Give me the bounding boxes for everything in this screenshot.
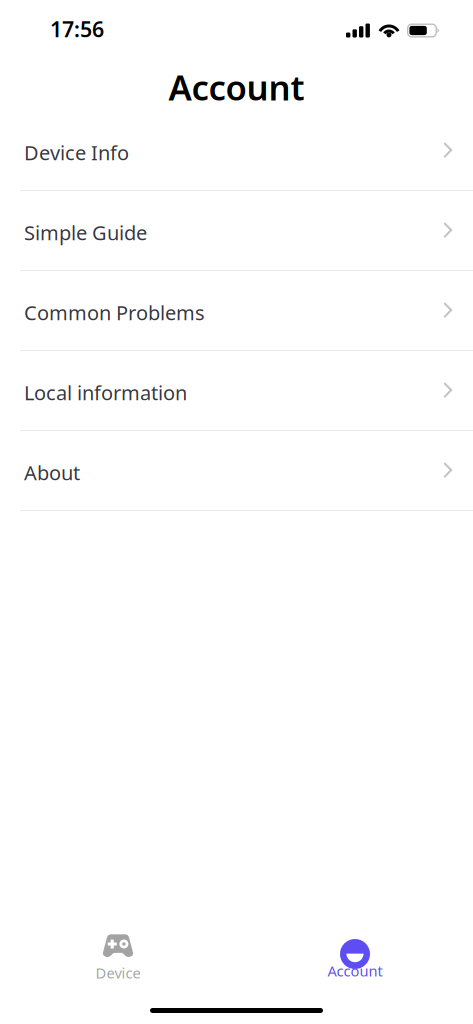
button[interactable]: Common Problems xyxy=(0,271,473,351)
button[interactable]: Simple Guide xyxy=(0,191,473,271)
button[interactable]: Device xyxy=(59,930,177,986)
staticText: 17:56 xyxy=(50,15,104,43)
staticText: Device Info xyxy=(24,139,129,166)
staticText: Simple Guide xyxy=(24,219,147,246)
staticText: Account xyxy=(327,961,382,980)
staticText: About xyxy=(24,459,80,486)
staticText: Local information xyxy=(24,379,187,406)
staticText: Common Problems xyxy=(24,299,205,326)
staticText: Device xyxy=(95,963,140,982)
button[interactable]: Local information xyxy=(0,351,473,431)
button[interactable]: Account xyxy=(296,930,414,986)
button[interactable]: Device Info xyxy=(0,111,473,191)
button[interactable]: About xyxy=(0,431,473,511)
staticText: Account xyxy=(168,64,304,110)
